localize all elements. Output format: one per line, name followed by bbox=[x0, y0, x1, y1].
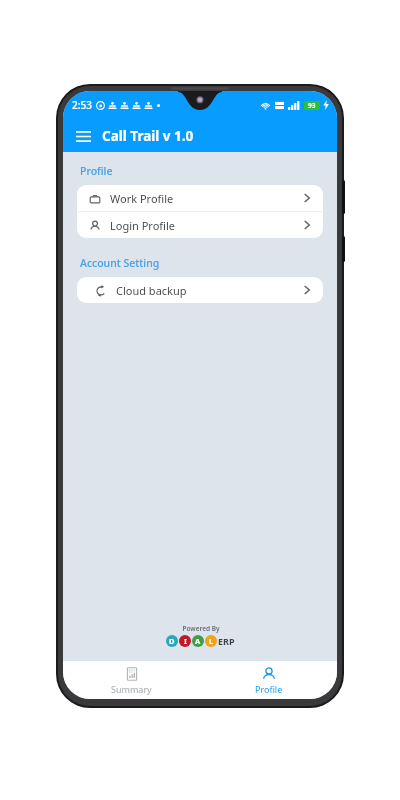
staticText: Profile bbox=[255, 683, 283, 695]
staticText: Call Trail v 1.0 bbox=[102, 127, 194, 145]
button[interactable]: Work Profile bbox=[77, 185, 323, 211]
staticText: 93 bbox=[308, 101, 316, 110]
staticText: D bbox=[169, 636, 175, 646]
staticText: Cloud backup bbox=[116, 283, 187, 298]
staticText: ERP bbox=[218, 635, 235, 647]
staticText: Work Profile bbox=[110, 191, 174, 206]
button[interactable]: Login Profile bbox=[77, 212, 323, 238]
staticText: L bbox=[209, 636, 214, 646]
staticText: Profile bbox=[80, 164, 113, 178]
staticText: A bbox=[195, 636, 201, 646]
button[interactable]: Profile bbox=[200, 661, 337, 699]
staticText: 2:53 bbox=[72, 98, 92, 112]
staticText: Powered By bbox=[182, 624, 220, 633]
button[interactable]: Summary bbox=[63, 661, 200, 699]
staticText: Summary bbox=[111, 683, 152, 695]
staticText: I bbox=[184, 636, 187, 646]
staticText: Login Profile bbox=[110, 218, 175, 233]
button[interactable]: Cloud backup bbox=[77, 277, 323, 303]
button[interactable]: Open navigation menu bbox=[69, 122, 97, 150]
staticText: Account Setting bbox=[80, 256, 160, 270]
